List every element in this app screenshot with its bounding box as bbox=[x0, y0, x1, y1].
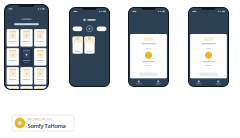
button[interactable]: Scene bbox=[34, 29, 46, 47]
staticText: WORKS WITH bbox=[27, 116, 51, 122]
button[interactable]: Open all bbox=[73, 26, 82, 31]
button[interactable]: Close all bbox=[97, 26, 106, 31]
button[interactable]: Stop bbox=[85, 25, 93, 33]
button[interactable]: Scene bbox=[20, 48, 33, 66]
button[interactable]: Action bbox=[139, 73, 158, 76]
staticText: Somfy TaHoma bbox=[27, 122, 65, 130]
button[interactable]: Scene bbox=[20, 67, 33, 85]
button[interactable]: Scene bbox=[7, 48, 19, 66]
button[interactable]: Tab bbox=[208, 80, 228, 84]
button[interactable]: Scene bbox=[7, 67, 19, 85]
button[interactable]: Scene bbox=[34, 48, 46, 66]
button[interactable]: Scene bbox=[20, 29, 33, 47]
button[interactable]: Tab bbox=[189, 80, 208, 84]
button[interactable]: Scene bbox=[7, 29, 19, 47]
button[interactable]: Tab bbox=[129, 80, 148, 84]
button[interactable]: Tab bbox=[148, 80, 168, 84]
button[interactable]: Scene bbox=[20, 86, 33, 104]
button[interactable]: Action bbox=[199, 73, 218, 76]
button[interactable]: Scene bbox=[34, 86, 46, 104]
button[interactable]: Scene bbox=[34, 67, 46, 85]
button[interactable]: Scene bbox=[7, 86, 19, 104]
